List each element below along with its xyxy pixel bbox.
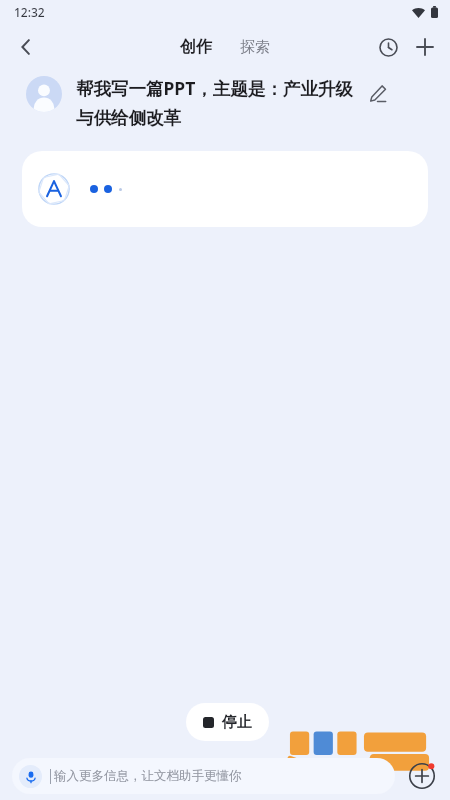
button[interactable]: 创作 [172,33,220,61]
button[interactable]: 帮我写一篇PPT，主题是：产业升级与供给侧改革 [0,70,450,129]
button[interactable]: New [406,28,444,66]
staticText: 帮我写一篇PPT，主题是：产业升级与供给侧改革 [76,76,356,129]
staticText: 探索 [240,38,270,57]
button[interactable]: Edit [360,76,394,110]
button[interactable]: 探索 [232,34,278,61]
staticText: 创作 [180,37,212,57]
button[interactable] [22,151,428,227]
button[interactable]: 输入更多信息，让文档助手更懂你 [12,758,395,794]
staticText: 停止 [222,713,252,732]
staticText: 输入更多信息，让文档助手更懂你 [54,768,242,784]
button[interactable]: Add [404,758,440,794]
button[interactable]: History [370,29,406,65]
button[interactable]: 停止 [186,703,269,741]
staticText: 12:32 [14,4,45,20]
button[interactable]: Back [6,27,46,67]
